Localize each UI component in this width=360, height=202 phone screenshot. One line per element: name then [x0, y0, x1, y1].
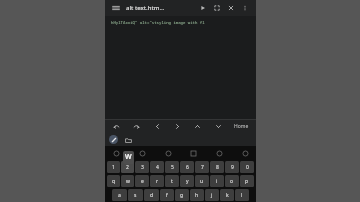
button[interactable]: q	[107, 175, 120, 187]
staticText: t	[171, 178, 173, 185]
staticText: s	[134, 192, 137, 199]
staticText: g	[180, 192, 184, 199]
button[interactable]: f	[160, 189, 174, 201]
staticText: hHylTAxxiQ" alt="stsyling image with fl	[111, 20, 205, 25]
button[interactable]: Undo	[110, 120, 122, 132]
button[interactable]: h	[190, 189, 204, 201]
button[interactable]: Keyboard tool 1	[111, 148, 121, 158]
button[interactable]: t	[165, 175, 179, 187]
button[interactable]: k	[220, 189, 234, 201]
button[interactable]: Move down	[212, 120, 224, 132]
button[interactable]: Keyboard tool 2	[137, 148, 147, 158]
staticText: 8	[216, 164, 219, 171]
button[interactable]: Edit	[109, 135, 118, 144]
button[interactable]: More options	[238, 1, 252, 15]
button[interactable]: Redo	[130, 120, 142, 132]
staticText: l	[241, 192, 243, 199]
staticText: e	[141, 178, 144, 185]
button[interactable]: 7	[195, 161, 209, 173]
button[interactable]: e	[135, 175, 149, 187]
staticText: W	[125, 152, 132, 162]
button[interactable]: u	[195, 175, 209, 187]
button[interactable]: d	[144, 189, 159, 201]
button[interactable]: 9	[225, 161, 239, 173]
staticText: 4	[156, 164, 159, 171]
button[interactable]: 2	[121, 161, 134, 173]
staticText: 6	[186, 164, 189, 171]
staticText: u	[200, 178, 204, 185]
staticText: h	[195, 192, 199, 199]
button[interactable]: 6	[180, 161, 194, 173]
staticText: 9	[231, 164, 234, 171]
button[interactable]: Keyboard tool 5	[214, 148, 224, 158]
staticText: 5	[171, 164, 174, 171]
button[interactable]: a	[112, 189, 127, 201]
button[interactable]: 3	[135, 161, 149, 173]
staticText: alt text.htm…	[126, 4, 165, 12]
staticText: 3	[141, 164, 144, 171]
button[interactable]: o	[225, 175, 239, 187]
staticText: q	[112, 178, 116, 185]
button[interactable]: l	[235, 189, 249, 201]
staticText: 1	[112, 164, 115, 171]
button[interactable]: Close	[224, 1, 238, 15]
staticText: k	[226, 192, 229, 199]
staticText: d	[150, 192, 154, 199]
button[interactable]: 8	[210, 161, 224, 173]
button[interactable]: alt text.htm…	[126, 4, 196, 12]
staticText: Home	[234, 123, 249, 130]
staticText: j	[211, 192, 213, 199]
button[interactable]: w	[121, 175, 134, 187]
staticText: 0	[246, 164, 249, 171]
staticText: w	[126, 178, 130, 185]
button[interactable]: 1	[107, 161, 120, 173]
staticText: r	[156, 178, 159, 185]
button[interactable]: j	[205, 189, 219, 201]
button[interactable]: s	[128, 189, 143, 201]
button[interactable]: Menu	[109, 1, 123, 15]
staticText: y	[186, 178, 189, 185]
button[interactable]: y	[180, 175, 194, 187]
staticText: p	[245, 178, 249, 185]
button[interactable]: 0	[240, 161, 254, 173]
staticText: o	[230, 178, 234, 185]
button[interactable]: 4	[150, 161, 164, 173]
button[interactable]: Move left	[151, 120, 163, 132]
button[interactable]: Keyboard tool 3	[163, 148, 173, 158]
staticText: a	[118, 192, 121, 199]
button[interactable]: r	[150, 175, 164, 187]
button[interactable]: Keyboard tool 4	[188, 148, 198, 158]
button[interactable]: Open folder	[123, 135, 133, 145]
button[interactable]: p	[240, 175, 254, 187]
button[interactable]: g	[175, 189, 189, 201]
button[interactable]: Move up	[191, 120, 203, 132]
button[interactable]: Fullscreen	[210, 1, 224, 15]
button[interactable]: 5	[165, 161, 179, 173]
staticText: 2	[126, 164, 129, 171]
staticText: 7	[201, 164, 204, 171]
button[interactable]: Home	[232, 123, 251, 130]
button[interactable]: Move right	[171, 120, 183, 132]
button[interactable]: i	[210, 175, 224, 187]
button[interactable]: Keyboard tool 6	[240, 148, 250, 158]
button[interactable]: Run	[196, 1, 210, 15]
staticText: i	[216, 178, 218, 185]
staticText: f	[166, 192, 168, 199]
